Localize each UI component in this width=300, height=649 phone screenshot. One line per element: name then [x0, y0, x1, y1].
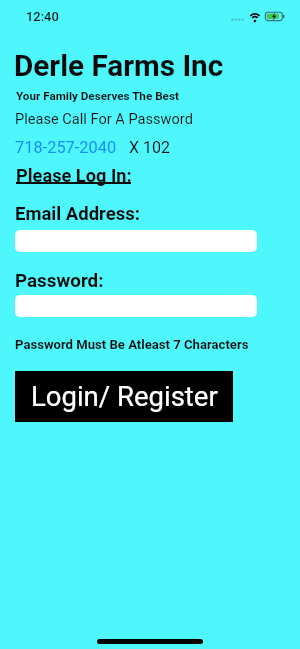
button[interactable]: [15, 295, 257, 317]
other: Battery charging: [265, 11, 285, 22]
staticText: Login/ Register: [31, 380, 218, 412]
staticText: Derle Farms Inc: [14, 48, 224, 83]
staticText: Password:: [15, 270, 104, 292]
other: Wi-Fi: [249, 11, 261, 22]
button[interactable]: 718-257-2040: [15, 138, 117, 157]
button[interactable]: [15, 230, 257, 252]
staticText: 12:40: [26, 9, 59, 24]
other: Cellular signal: [231, 17, 248, 23]
staticText: X 102: [129, 138, 170, 157]
staticText: Please Log In:: [16, 165, 132, 186]
button[interactable]: Login/ Register: [15, 371, 233, 422]
staticText: Your Family Deserves The Best: [16, 89, 179, 103]
staticText: Please Call For A Password: [15, 110, 193, 127]
staticText: Password Must Be Atleast 7 Characters: [15, 337, 249, 352]
staticText: Email Address:: [15, 203, 140, 225]
button[interactable]: Please Log In:: [16, 165, 132, 186]
